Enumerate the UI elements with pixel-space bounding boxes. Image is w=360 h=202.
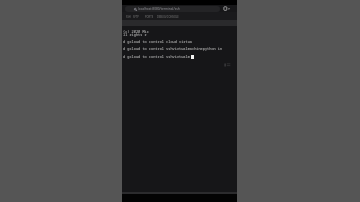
staticText: SFTP	[133, 15, 139, 19]
button[interactable]: localhost:8080/terminal/ssh	[125, 6, 220, 12]
button[interactable]: SFTP	[133, 15, 139, 19]
staticText: (c) 2020 Mic	[123, 29, 149, 34]
button[interactable]: PORTS	[145, 15, 154, 19]
button[interactable]: SSH	[126, 15, 131, 19]
button[interactable]: DEBUG/CONSOLE	[157, 15, 179, 19]
staticText: PORTS	[145, 15, 154, 19]
button[interactable]: Tabs	[221, 5, 234, 12]
staticText: d gcloud to control sshvirtualmachinepyt…	[123, 46, 225, 51]
staticText: d gcloud to control cloud virtua	[123, 39, 192, 44]
staticText: ll rights r	[123, 32, 147, 37]
staticText: SSH	[126, 15, 131, 19]
staticText: DEBUG/CONSOLE	[157, 15, 179, 19]
staticText: d gcloud to control sshvirtualm	[123, 54, 190, 59]
staticText: localhost:8080/terminal/ssh	[138, 7, 180, 11]
